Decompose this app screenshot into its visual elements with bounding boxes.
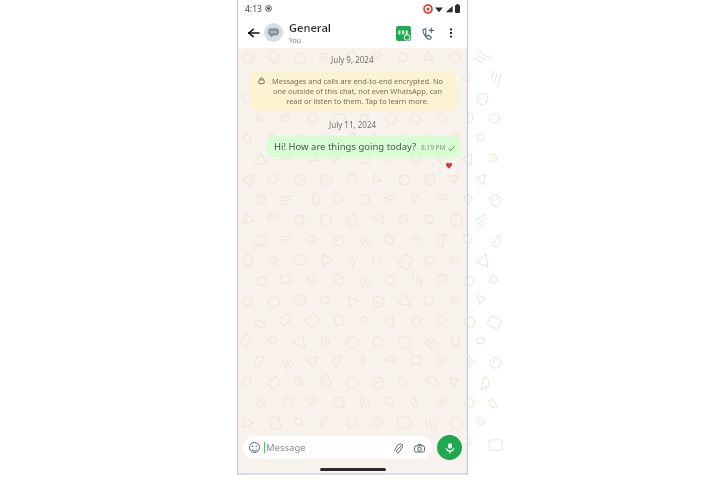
staticText: Message	[266, 441, 306, 454]
button[interactable]: General	[289, 20, 393, 46]
staticText: Messages and calls are end-to-end encryp…	[267, 76, 448, 106]
button[interactable]: Message	[243, 436, 432, 459]
staticText: Hi! How are things going today?	[274, 140, 417, 153]
button[interactable]: Hi! How are things going today?	[267, 136, 460, 157]
button[interactable]: Call	[418, 23, 438, 43]
button[interactable]	[442, 159, 456, 171]
button[interactable]: Voice message	[437, 435, 462, 460]
button[interactable]	[264, 23, 283, 42]
staticText: 4:13	[245, 3, 262, 15]
staticText: July 9, 2024	[331, 54, 374, 65]
button[interactable]: Messages and calls are end-to-end encryp…	[250, 71, 456, 111]
staticText: 8:19 PM	[421, 143, 446, 152]
staticText: General	[289, 20, 331, 35]
staticText: You	[289, 36, 302, 46]
staticText: July 11, 2024	[329, 119, 377, 130]
button[interactable]: Camera	[412, 441, 426, 455]
button[interactable]: More options	[441, 23, 461, 43]
button[interactable]: Attach	[391, 441, 405, 455]
button[interactable]: WhatsApp Business	[393, 23, 413, 43]
button[interactable]: Back	[244, 24, 262, 42]
